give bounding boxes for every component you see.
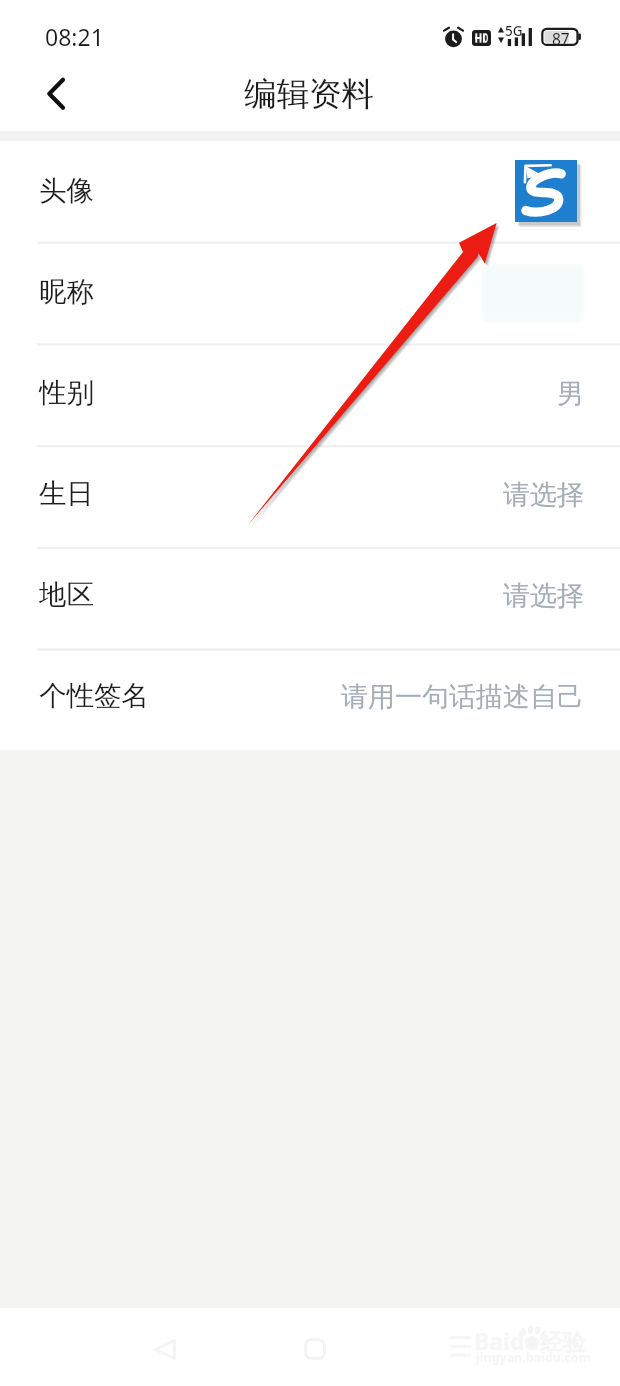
- staticText: 08:21: [45, 21, 104, 52]
- staticText: 请用一句话描述自己: [341, 680, 584, 714]
- staticText: 地区: [39, 578, 94, 613]
- button[interactable]: Back: [22, 65, 84, 127]
- button[interactable]: 昵称: [0, 242, 620, 343]
- staticText: Baidu经验: [474, 1325, 586, 1356]
- staticText: 个性签名: [39, 679, 149, 714]
- staticText: 5G: [505, 22, 523, 40]
- button[interactable]: 个性签名: [0, 646, 620, 747]
- staticText: 男: [557, 377, 584, 411]
- button[interactable]: 头像: [0, 141, 620, 242]
- staticText: 请选择: [503, 579, 584, 613]
- button[interactable]: 地区: [0, 545, 620, 646]
- staticText: 昵称: [39, 275, 94, 310]
- staticText: 性别: [39, 376, 94, 411]
- button[interactable]: 生日: [0, 444, 620, 545]
- staticText: 生日: [39, 477, 94, 512]
- staticText: 请选择: [503, 478, 584, 512]
- staticText: 头像: [39, 174, 94, 209]
- staticText: 编辑资料: [244, 74, 374, 115]
- button[interactable]: 性别: [0, 343, 620, 444]
- button[interactable]: Home: [293, 1327, 337, 1371]
- staticText: jingyan.baidu.com: [476, 1349, 591, 1366]
- staticText: 87: [552, 28, 570, 49]
